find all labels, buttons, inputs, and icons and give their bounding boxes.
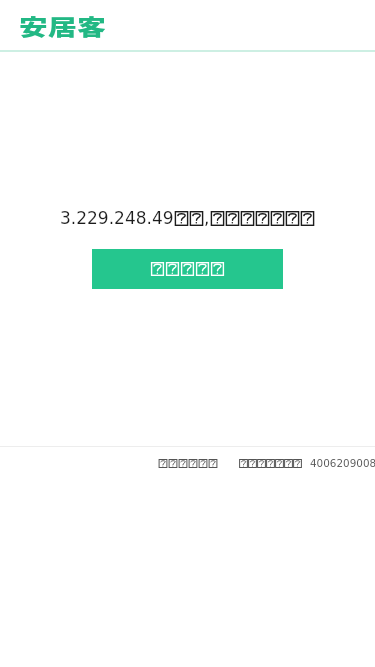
button[interactable] — [158, 459, 218, 468]
button[interactable]: 安居客 — [19, 9, 87, 41]
staticText: 3.229.248.49 — [60, 208, 174, 228]
staticText: 安居客 — [19, 9, 107, 41]
button[interactable] — [92, 249, 283, 289]
staticText: 4006209008 — [310, 457, 375, 469]
staticText: , — [204, 208, 210, 228]
button[interactable] — [239, 459, 302, 468]
